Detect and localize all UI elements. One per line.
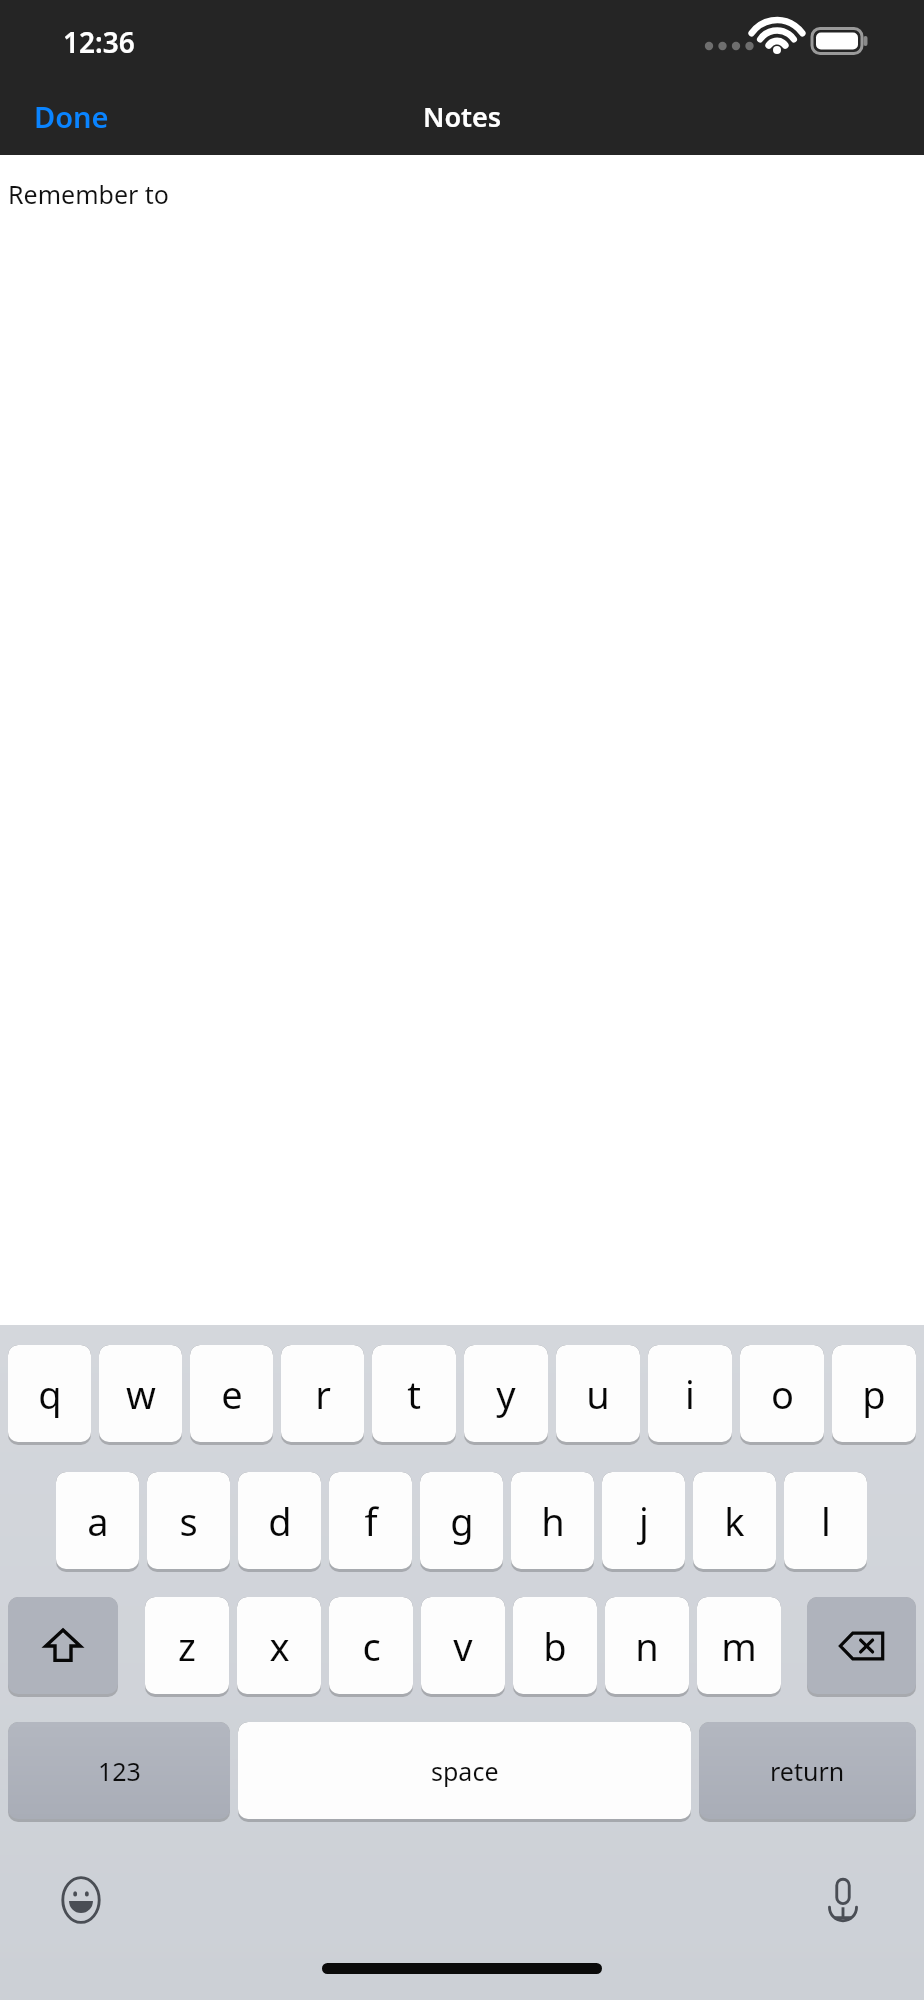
staticText: Notes xyxy=(423,98,502,135)
button[interactable]: t xyxy=(372,1345,456,1442)
staticText: q xyxy=(38,1368,62,1420)
button[interactable]: Emoji keyboard xyxy=(50,1869,112,1931)
staticText: o xyxy=(771,1368,794,1420)
button[interactable]: return xyxy=(699,1722,916,1819)
button[interactable]: Backspace xyxy=(807,1597,916,1694)
button[interactable]: n xyxy=(605,1597,689,1694)
button[interactable]: c xyxy=(329,1597,413,1694)
staticText: 12:36 xyxy=(63,23,135,61)
staticText: j xyxy=(639,1495,649,1547)
staticText: space xyxy=(431,1754,499,1788)
staticText: e xyxy=(221,1368,243,1420)
staticText: Done xyxy=(34,97,109,136)
staticText: g xyxy=(450,1495,474,1547)
staticText: d xyxy=(268,1495,292,1547)
staticText: a xyxy=(87,1495,109,1547)
staticText: c xyxy=(362,1620,381,1672)
staticText: h xyxy=(541,1495,565,1547)
button[interactable]: 123 xyxy=(8,1722,230,1819)
button[interactable]: w xyxy=(99,1345,182,1442)
button[interactable]: u xyxy=(556,1345,640,1442)
staticText: s xyxy=(179,1495,198,1547)
button[interactable]: Shift xyxy=(8,1597,118,1694)
button[interactable]: g xyxy=(420,1472,503,1569)
button[interactable]: k xyxy=(693,1472,776,1569)
button[interactable]: v xyxy=(421,1597,505,1694)
button[interactable]: q xyxy=(8,1345,91,1442)
staticText: u xyxy=(586,1368,610,1420)
staticText: 123 xyxy=(98,1754,141,1788)
button[interactable]: e xyxy=(190,1345,273,1442)
button[interactable]: h xyxy=(511,1472,594,1569)
staticText: r xyxy=(315,1368,331,1420)
button[interactable]: s xyxy=(147,1472,230,1569)
staticText: k xyxy=(724,1495,745,1547)
button[interactable]: m xyxy=(697,1597,781,1694)
button[interactable]: Done xyxy=(0,87,143,146)
button[interactable]: o xyxy=(740,1345,824,1442)
staticText: v xyxy=(453,1620,473,1672)
button[interactable]: i xyxy=(648,1345,732,1442)
staticText: z xyxy=(178,1620,196,1672)
button[interactable]: b xyxy=(513,1597,597,1694)
staticText: y xyxy=(496,1368,516,1420)
button[interactable]: f xyxy=(329,1472,412,1569)
button[interactable]: l xyxy=(784,1472,867,1569)
button[interactable]: a xyxy=(56,1472,139,1569)
staticText: n xyxy=(635,1620,659,1672)
staticText: return xyxy=(770,1754,845,1788)
button[interactable]: p xyxy=(832,1345,916,1442)
button[interactable]: r xyxy=(281,1345,364,1442)
button[interactable]: x xyxy=(237,1597,321,1694)
button[interactable]: space xyxy=(238,1722,691,1819)
staticText: p xyxy=(862,1368,886,1420)
button[interactable]: y xyxy=(464,1345,548,1442)
staticText: b xyxy=(543,1620,567,1672)
button[interactable]: d xyxy=(238,1472,321,1569)
staticText: Remember to xyxy=(8,177,169,211)
staticText: w xyxy=(126,1368,156,1420)
staticText: t xyxy=(407,1368,421,1420)
staticText: f xyxy=(364,1495,378,1547)
staticText: i xyxy=(685,1368,695,1420)
button[interactable]: Dictation xyxy=(812,1869,874,1931)
button[interactable]: j xyxy=(602,1472,685,1569)
button[interactable]: z xyxy=(145,1597,229,1694)
staticText: x xyxy=(269,1620,290,1672)
staticText: m xyxy=(721,1620,757,1672)
staticText: l xyxy=(821,1495,831,1547)
